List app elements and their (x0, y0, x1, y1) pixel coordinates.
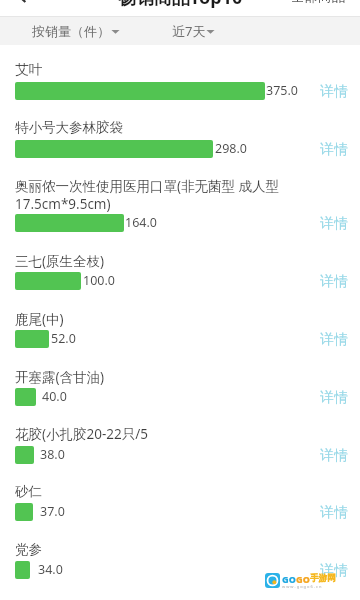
button[interactable]: 党参 (0, 535, 360, 600)
staticText: 详情 (320, 504, 348, 522)
staticText: 375.0 (266, 82, 298, 99)
staticText: 34.0 (38, 561, 63, 578)
button[interactable]: 详情 (309, 388, 360, 408)
button[interactable]: 三七(原生全枝) (0, 246, 360, 304)
button[interactable]: 详情 (309, 140, 360, 160)
staticText: 164.0 (125, 214, 157, 231)
button[interactable]: 详情 (309, 446, 360, 466)
button[interactable]: 返回 (0, 0, 44, 18)
button[interactable]: 鹿尾(中) (0, 304, 360, 362)
button[interactable]: 详情 (309, 272, 360, 292)
staticText: GO (296, 573, 310, 585)
staticText: 三七(原生全枝) (15, 252, 294, 270)
staticText: 鹿尾(中) (15, 310, 294, 328)
staticText: 37.0 (40, 503, 65, 520)
staticText: 100.0 (83, 272, 115, 289)
staticText: 52.0 (51, 330, 76, 347)
staticText: 38.0 (40, 446, 65, 463)
button[interactable]: 奥丽侬一次性使用医用口罩(非无菌型 成人型 17.5cm*9.5cm) (0, 171, 360, 246)
button[interactable]: 详情 (309, 214, 360, 234)
staticText: 花胶(小扎胶20-22只/5 (15, 425, 294, 443)
staticText: 党参 (15, 541, 294, 558)
button[interactable]: 详情 (309, 503, 360, 523)
button[interactable]: 全部商品 (281, 0, 360, 5)
staticText: 按销量（件） (32, 23, 110, 39)
button[interactable]: 开塞露(含甘油) (0, 362, 360, 419)
staticText: GO (282, 573, 296, 585)
button[interactable]: 详情 (309, 82, 360, 102)
staticText: 详情 (320, 215, 348, 233)
staticText: 详情 (320, 141, 348, 159)
staticText: 298.0 (215, 140, 247, 157)
staticText: 开塞露(含甘油) (15, 368, 294, 386)
button[interactable]: 详情 (309, 330, 360, 350)
button[interactable]: 详情 (309, 561, 360, 581)
staticText: 全部商品 (291, 0, 345, 5)
staticText: 详情 (320, 562, 348, 580)
button[interactable]: 花胶(小扎胶20-22只/5 (0, 419, 360, 477)
staticText: 详情 (320, 389, 348, 407)
staticText: 畅销商品Top10 (0, 0, 360, 10)
staticText: 详情 (320, 273, 348, 291)
staticText: 砂仁 (15, 483, 294, 500)
staticText: w w w . g o g o 6 . c n (282, 584, 322, 589)
staticText: 特小号大参林胶袋 (15, 119, 294, 136)
button[interactable]: 近7天 (172, 22, 215, 40)
button[interactable]: 砂仁 (0, 477, 360, 535)
staticText: 艾叶 (15, 61, 294, 78)
button[interactable]: 特小号大参林胶袋 (0, 113, 360, 171)
staticText: 奥丽侬一次性使用医用口罩(非无菌型 成人型 17.5cm*9.5cm) (15, 177, 294, 213)
staticText: 详情 (320, 331, 348, 349)
button[interactable]: 艾叶 (0, 46, 360, 113)
staticText: 近7天 (172, 22, 206, 40)
staticText: 详情 (320, 447, 348, 465)
staticText: 详情 (320, 83, 348, 101)
button[interactable]: 按销量（件） (32, 23, 120, 39)
staticText: 40.0 (42, 388, 67, 405)
staticText: 手游网 (310, 573, 336, 584)
